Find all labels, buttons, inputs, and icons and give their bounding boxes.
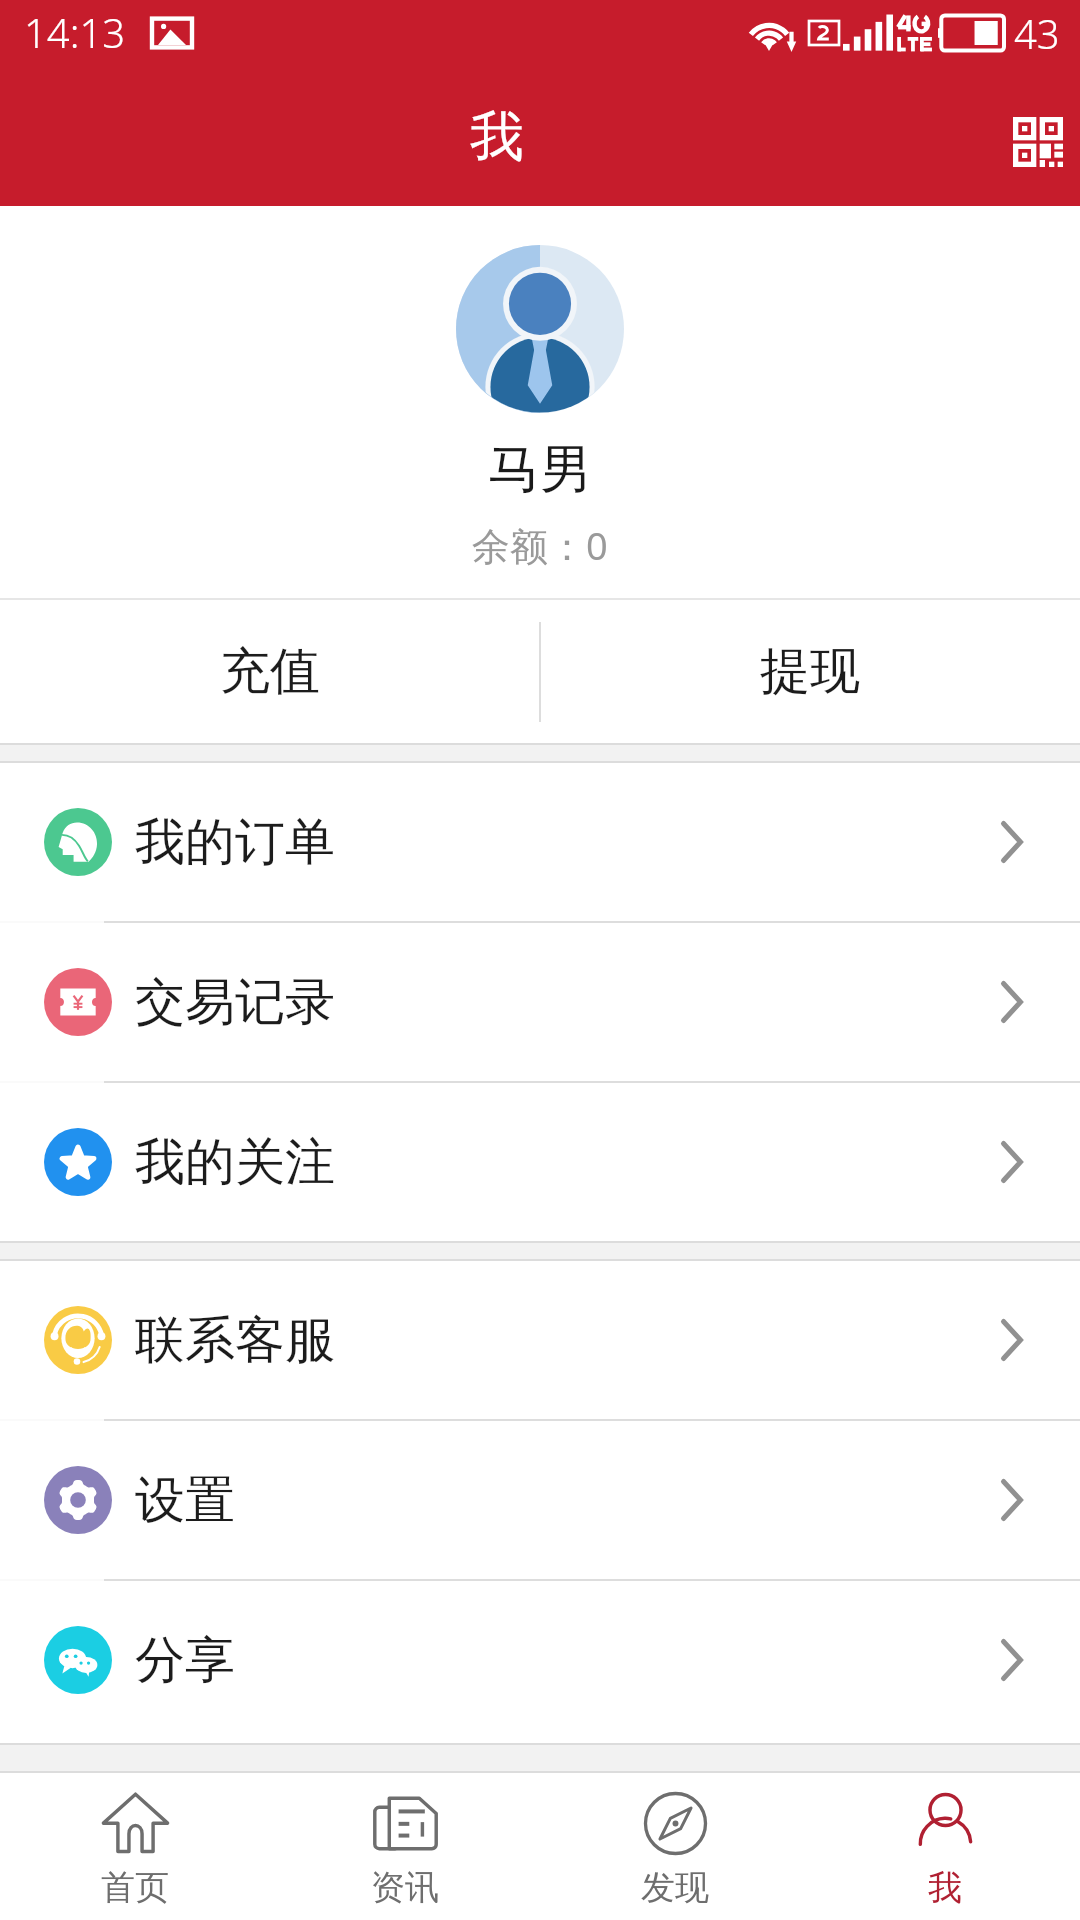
button[interactable]: 首页: [0, 1773, 270, 1920]
staticText: 余额：0: [472, 519, 608, 571]
button[interactable]: 发现: [540, 1773, 810, 1920]
button[interactable]: 我: [810, 1773, 1080, 1920]
staticText: 充值: [220, 640, 320, 703]
button[interactable]: 我的关注: [0, 1083, 1080, 1241]
button[interactable]: 设置: [0, 1421, 1080, 1579]
staticText: 设置: [135, 1469, 235, 1532]
staticText: 联系客服: [135, 1309, 335, 1372]
staticText: 交易记录: [135, 971, 335, 1034]
staticText: 我: [928, 1866, 962, 1909]
button[interactable]: 充值: [0, 600, 540, 743]
staticText: 43: [1014, 6, 1060, 60]
button[interactable]: Scan QR code: [1002, 106, 1074, 178]
staticText: 我的订单: [135, 811, 335, 874]
staticText: 分享: [135, 1629, 235, 1692]
staticText: 我的关注: [135, 1131, 335, 1194]
button[interactable]: 资讯: [270, 1773, 540, 1920]
staticText: 马男: [488, 437, 592, 503]
button[interactable]: 我的订单: [0, 763, 1080, 921]
button[interactable]: 分享: [0, 1581, 1080, 1739]
staticText: 14:13: [24, 5, 126, 59]
staticText: 提现: [760, 640, 860, 703]
staticText: 我: [470, 103, 524, 171]
staticText: 首页: [101, 1866, 169, 1909]
staticText: 发现: [641, 1866, 709, 1909]
button[interactable]: 联系客服: [0, 1261, 1080, 1419]
button[interactable]: 提现: [540, 600, 1080, 743]
button[interactable]: 交易记录: [0, 923, 1080, 1081]
staticText: 资讯: [371, 1866, 439, 1909]
